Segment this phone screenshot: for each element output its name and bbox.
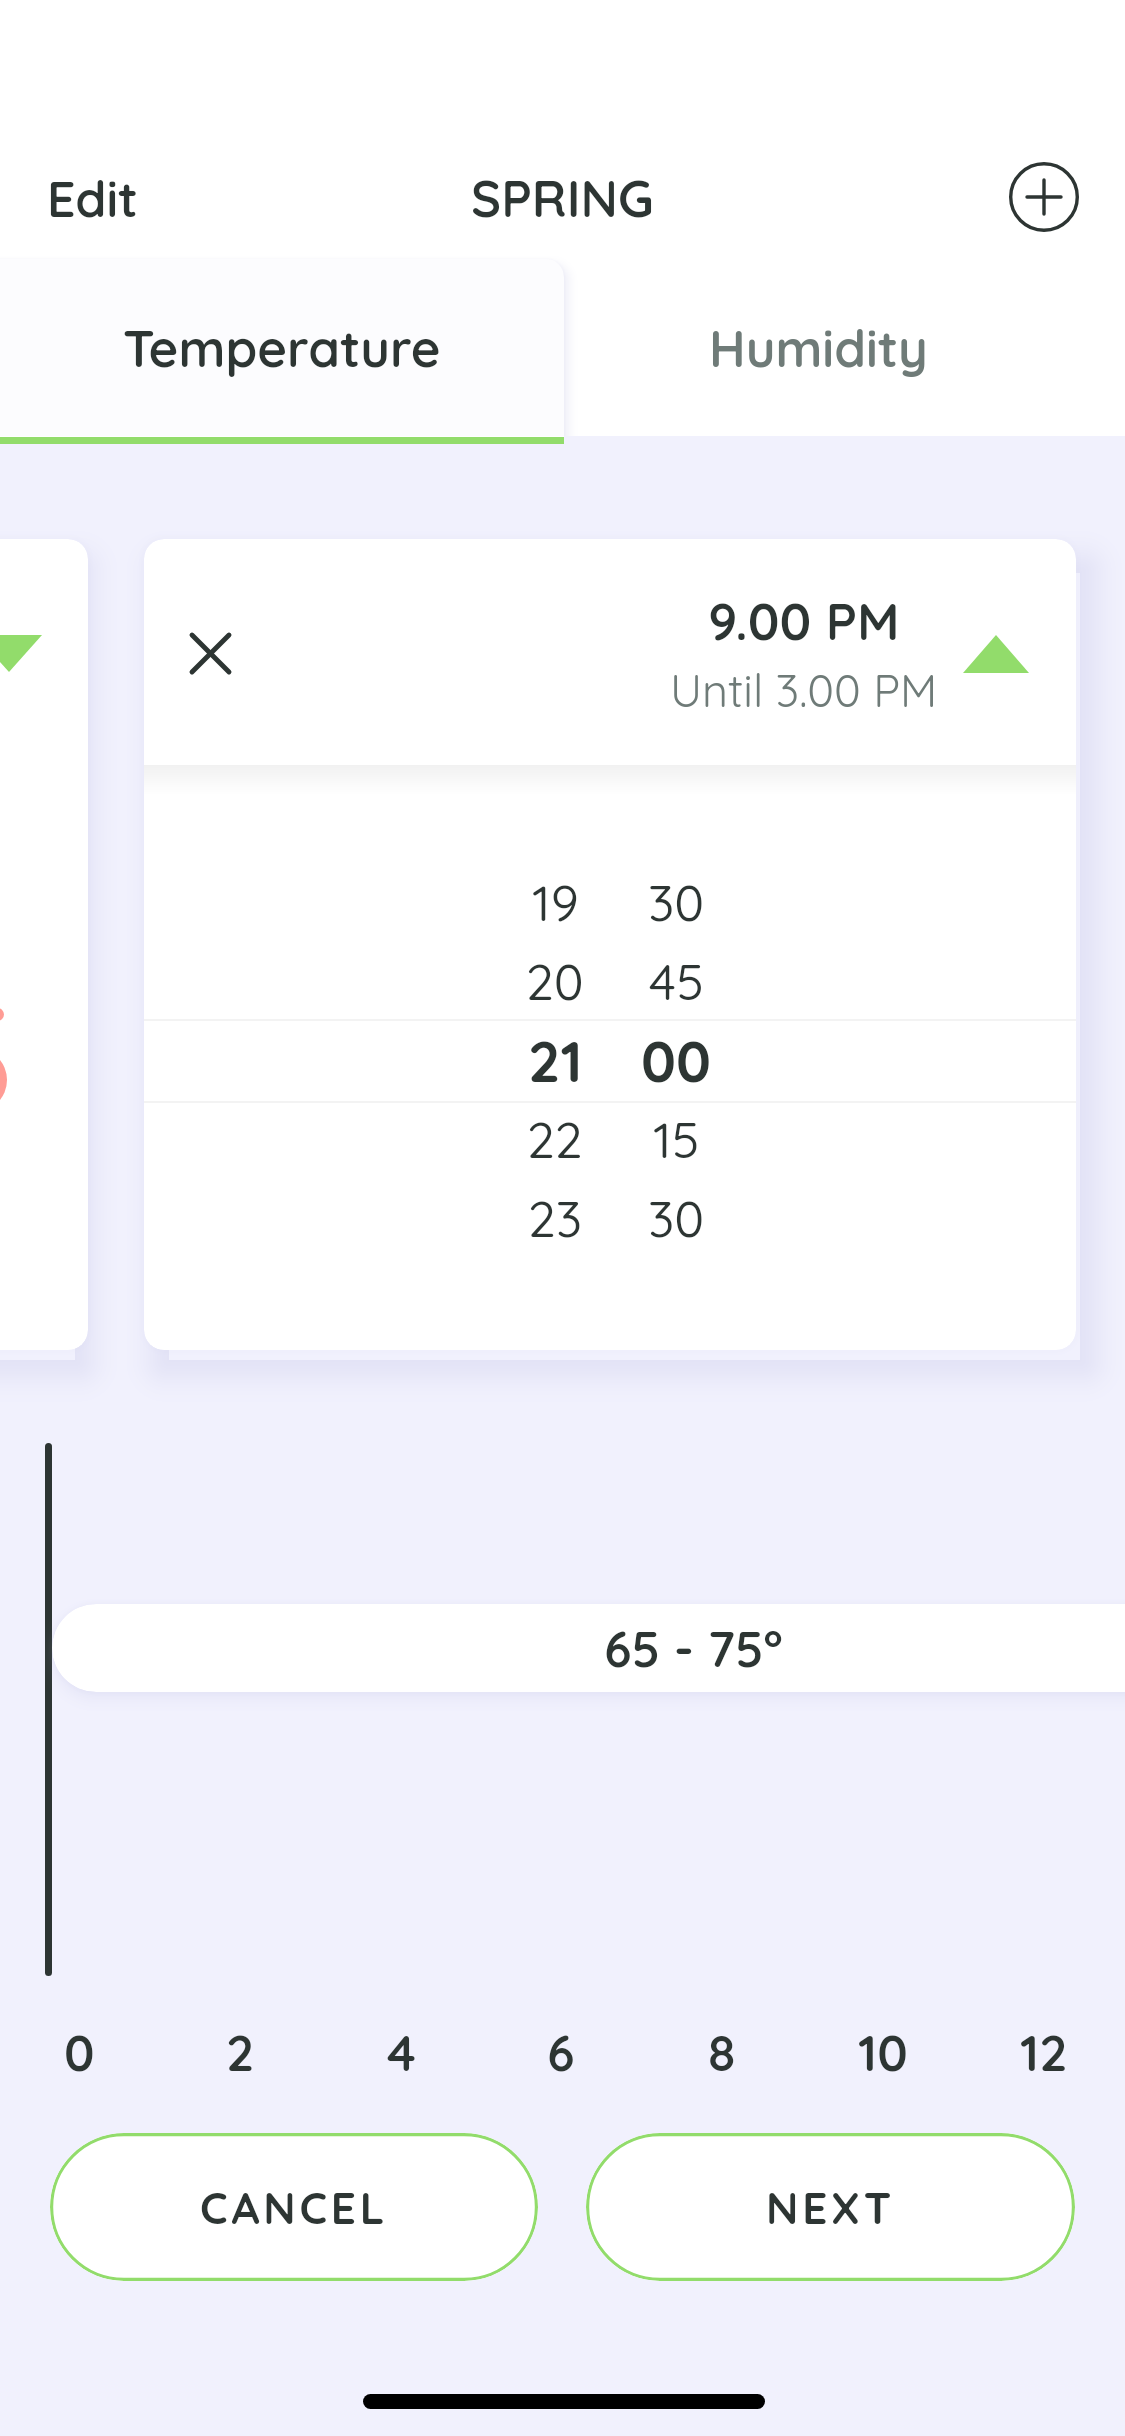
- staticText: 65 - 75°: [604, 1617, 783, 1680]
- staticText: Until 3.00 PM: [670, 662, 938, 718]
- button[interactable]: Collapse: [944, 615, 1048, 693]
- staticText: NEXT: [766, 2180, 896, 2235]
- staticText: 21: [528, 1025, 583, 1096]
- staticText: Humidity: [709, 316, 928, 380]
- staticText: 20: [526, 950, 584, 1013]
- button[interactable]: CANCEL: [50, 2133, 538, 2281]
- button[interactable]: Add schedule: [1000, 153, 1088, 241]
- button[interactable]: 23: [495, 1179, 615, 1258]
- staticText: 30: [648, 871, 705, 934]
- button[interactable]: NEXT: [586, 2133, 1075, 2281]
- staticText: Temperature: [123, 316, 441, 380]
- staticText: 45: [649, 950, 704, 1013]
- button[interactable]: 00: [616, 1021, 736, 1100]
- staticText: 12: [1020, 2021, 1068, 2084]
- button[interactable]: 30: [616, 863, 736, 942]
- staticText: 9.00 PM: [708, 588, 900, 653]
- button[interactable]: Close: [172, 615, 248, 691]
- staticText: Edit: [47, 167, 138, 230]
- staticText: 2: [226, 2021, 255, 2084]
- staticText: 6: [547, 2021, 575, 2084]
- staticText: 00: [641, 1025, 711, 1096]
- button[interactable]: 20: [495, 942, 615, 1021]
- button[interactable]: 45: [616, 942, 736, 1021]
- button[interactable]: 65 - 75°: [52, 1604, 1125, 1692]
- staticText: 10: [858, 2021, 908, 2084]
- staticText: SPRING: [471, 166, 654, 230]
- staticText: 23: [528, 1187, 583, 1250]
- staticText: CANCEL: [200, 2180, 389, 2235]
- staticText: 19: [532, 871, 579, 934]
- button[interactable]: Humidity: [564, 259, 1072, 436]
- button[interactable]: 30: [616, 1179, 736, 1258]
- button[interactable]: 15: [616, 1100, 736, 1179]
- button[interactable]: Edit: [25, 151, 160, 246]
- staticText: 15: [653, 1108, 700, 1171]
- staticText: 22: [527, 1108, 583, 1171]
- staticText: 4: [387, 2021, 416, 2084]
- button[interactable]: Temperature: [0, 259, 564, 437]
- staticText: 0: [64, 2021, 95, 2084]
- staticText: 8: [708, 2021, 736, 2084]
- button[interactable]: 21: [495, 1021, 615, 1100]
- button[interactable]: 22: [495, 1100, 615, 1179]
- staticText: 30: [648, 1187, 705, 1250]
- button[interactable]: 19: [495, 863, 615, 942]
